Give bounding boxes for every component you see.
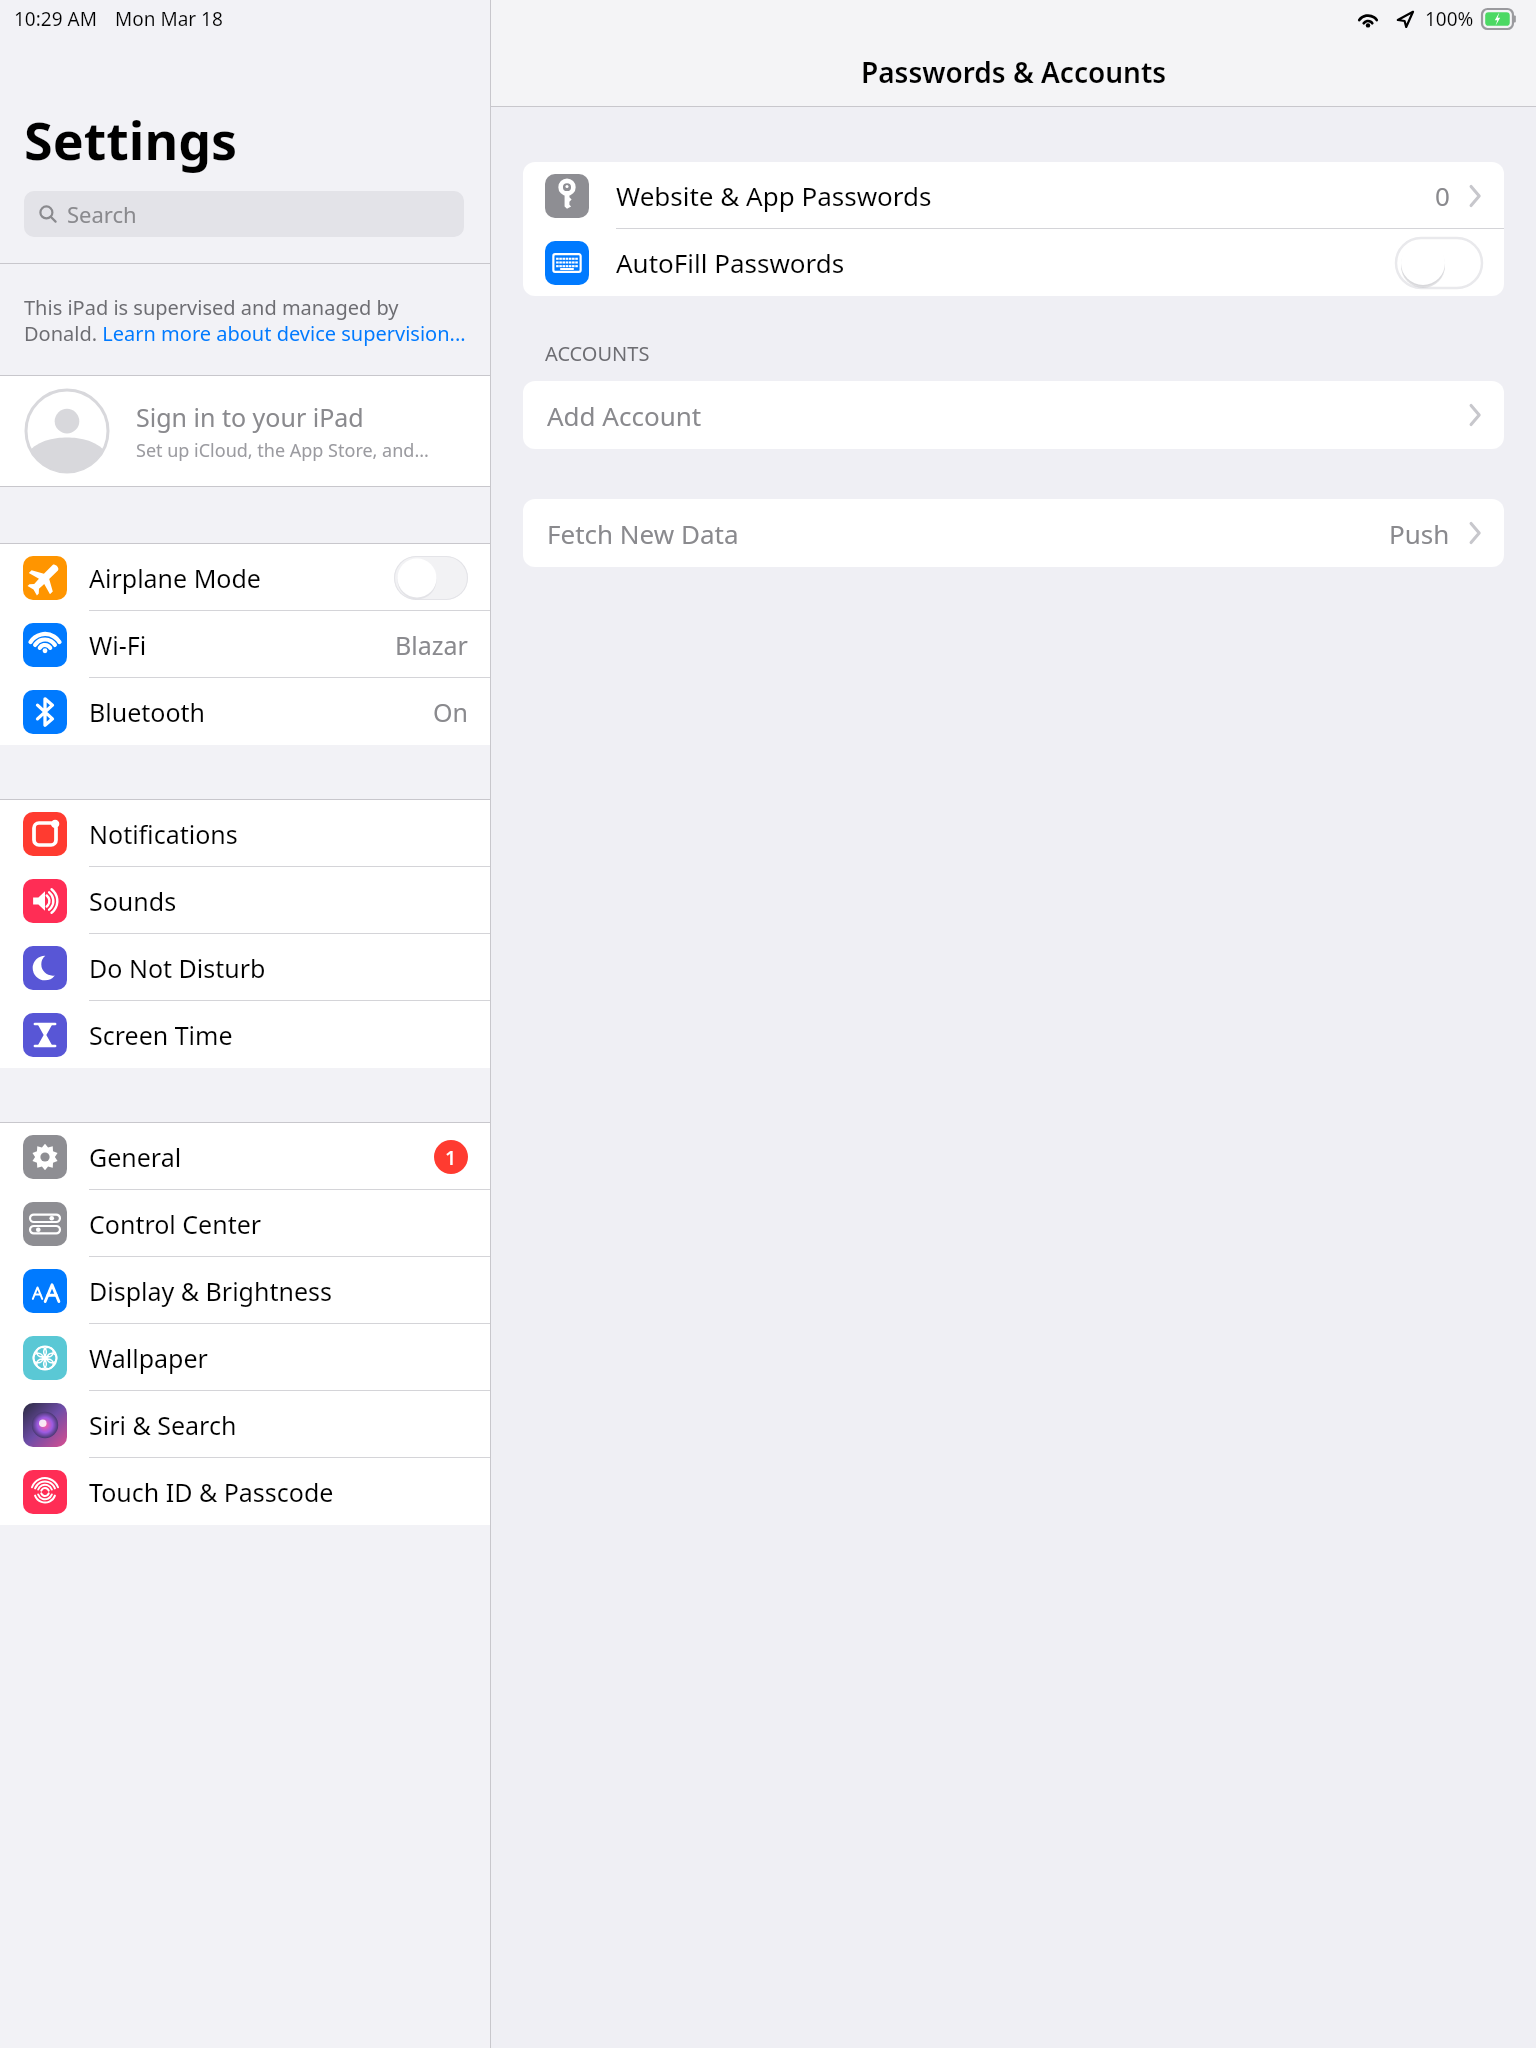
staticText: Set up iCloud, the App Store, and... [136, 438, 429, 463]
staticText: Siri & Search [89, 1408, 237, 1442]
button[interactable]: AutoFill Passwords toggle [1396, 238, 1482, 288]
button[interactable]: Control Center [0, 1190, 490, 1257]
staticText: Control Center [89, 1207, 262, 1241]
staticText: Website & App Passwords [616, 178, 932, 213]
staticText: 1 [445, 1144, 457, 1171]
staticText: This iPad is supervised and managed by D… [24, 294, 468, 347]
staticText: 0 [1435, 178, 1450, 213]
button[interactable]: Notifications [0, 800, 490, 867]
staticText: ACCOUNTS [545, 340, 650, 367]
staticText: Passwords & Accounts [861, 53, 1167, 91]
button[interactable]: Siri & Search [0, 1391, 490, 1458]
staticText: 100% [1425, 6, 1474, 32]
button[interactable]: Screen Time [0, 1001, 490, 1068]
staticText: Wi-Fi [89, 628, 147, 662]
staticText: Bluetooth [89, 695, 206, 729]
staticText: Push [1389, 516, 1450, 551]
button[interactable]: Display & Brightness [0, 1257, 490, 1324]
staticText: Airplane Mode [89, 561, 261, 595]
button[interactable]: Wallpaper [0, 1324, 490, 1391]
staticText: Sign in to your iPad [136, 400, 364, 434]
button[interactable]: Airplane Mode toggle [394, 556, 468, 600]
button[interactable]: Fetch New Data [523, 499, 1504, 567]
button[interactable]: Website & App Passwords [523, 162, 1504, 229]
staticText: Sounds [89, 884, 177, 918]
staticText: Settings [24, 104, 238, 175]
staticText: General [89, 1140, 182, 1174]
button[interactable]: Do Not Disturb [0, 934, 490, 1001]
button[interactable]: Search [24, 191, 464, 237]
button[interactable]: Airplane Mode [0, 544, 490, 611]
staticText: Screen Time [89, 1018, 233, 1052]
staticText: Touch ID & Passcode [89, 1475, 334, 1509]
staticText: 10:29 AM [14, 6, 97, 32]
button[interactable]: Touch ID & Passcode [0, 1458, 490, 1525]
staticText: Add Account [547, 398, 702, 433]
staticText: Blazar [395, 628, 468, 662]
staticText: Mon Mar 18 [115, 6, 223, 32]
button[interactable]: Sign in to your iPad [0, 376, 490, 486]
button[interactable]: Sounds [0, 867, 490, 934]
staticText: Do Not Disturb [89, 951, 266, 985]
staticText: Search [67, 199, 137, 229]
staticText: Notifications [89, 817, 238, 851]
button[interactable]: Bluetooth [0, 678, 490, 745]
button[interactable]: Add Account [523, 381, 1504, 449]
staticText: Display & Brightness [89, 1274, 332, 1308]
staticText: AutoFill Passwords [616, 245, 845, 280]
staticText: On [433, 695, 468, 729]
button[interactable]: Wi-Fi [0, 611, 490, 678]
staticText: Wallpaper [89, 1341, 208, 1375]
staticText: Fetch New Data [547, 516, 739, 551]
button[interactable]: General [0, 1123, 490, 1190]
button[interactable]: AutoFill Passwords [523, 229, 1504, 296]
